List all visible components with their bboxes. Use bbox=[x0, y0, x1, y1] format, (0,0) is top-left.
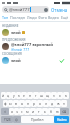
button[interactable]: злой bbox=[0, 56, 70, 65]
button[interactable]: г bbox=[33, 92, 39, 99]
staticText: Отмена bbox=[51, 7, 68, 13]
staticText: СООБЩЕНИЯ bbox=[2, 52, 22, 56]
button[interactable]: Люди bbox=[26, 15, 37, 20]
button[interactable]: с bbox=[19, 108, 24, 115]
button[interactable]: ы bbox=[8, 100, 13, 107]
staticText: НЕДАВНИЕ bbox=[2, 24, 19, 28]
staticText: Пробел bbox=[31, 117, 44, 122]
staticText: а bbox=[21, 101, 23, 106]
button[interactable]: ь bbox=[42, 108, 48, 115]
staticText: б bbox=[50, 109, 53, 114]
button[interactable]: я bbox=[9, 108, 14, 115]
staticText: з bbox=[53, 93, 55, 98]
button[interactable]: э bbox=[61, 100, 67, 107]
button[interactable]: т bbox=[36, 108, 42, 115]
button[interactable]: х bbox=[57, 92, 63, 99]
staticText: м bbox=[26, 109, 29, 114]
button[interactable]: ю bbox=[54, 108, 60, 115]
staticText: Фото bbox=[38, 15, 47, 20]
button[interactable]: е bbox=[21, 92, 27, 99]
button[interactable]: л bbox=[43, 100, 49, 107]
button[interactable]: ☺ bbox=[13, 116, 21, 123]
button[interactable]: н bbox=[27, 92, 33, 99]
button[interactable]: к bbox=[16, 92, 21, 99]
button[interactable]: й bbox=[1, 92, 6, 99]
staticText: р bbox=[33, 101, 36, 106]
button[interactable]: ⌫ bbox=[60, 108, 69, 115]
staticText: ч bbox=[16, 109, 18, 114]
staticText: л bbox=[45, 101, 47, 106]
staticText: в bbox=[15, 101, 17, 106]
button[interactable]: щ bbox=[45, 92, 51, 99]
staticText: Люди bbox=[27, 15, 37, 20]
button[interactable]: р bbox=[31, 100, 37, 107]
button[interactable]: д bbox=[49, 100, 55, 107]
staticText: @злой777 bbox=[9, 7, 30, 13]
staticText: ☺ bbox=[15, 118, 19, 121]
button[interactable]: ъ bbox=[63, 92, 69, 99]
button[interactable]: ф bbox=[3, 100, 8, 107]
staticText: у bbox=[13, 93, 15, 98]
button[interactable]: и bbox=[30, 108, 36, 115]
button[interactable]: ш bbox=[39, 92, 45, 99]
staticText: ПРЕДЛОЖЕНИЯ bbox=[2, 38, 26, 42]
button[interactable]: Топ bbox=[0, 15, 10, 20]
staticText: х bbox=[59, 93, 61, 98]
staticText: с bbox=[21, 109, 23, 114]
staticText: н bbox=[29, 93, 32, 98]
staticText: ь bbox=[44, 109, 46, 114]
staticText: ⇧ bbox=[4, 110, 7, 113]
button[interactable]: б bbox=[48, 108, 54, 115]
staticText: ю bbox=[56, 109, 59, 114]
staticText: Найти bbox=[57, 118, 67, 122]
staticText: д bbox=[51, 101, 54, 106]
button[interactable]: @злой777 bbox=[2, 6, 49, 13]
staticText: ъ bbox=[65, 93, 68, 98]
staticText: е bbox=[23, 93, 25, 98]
button[interactable]: @злой777 эхронный bbox=[0, 42, 70, 51]
staticText: злой bbox=[11, 58, 21, 63]
button[interactable]: Фото bbox=[37, 15, 48, 20]
staticText: ⌫ bbox=[62, 110, 67, 113]
staticText: Видео bbox=[48, 15, 59, 20]
staticText: @злой777 эхронный bbox=[11, 42, 53, 47]
staticText: и bbox=[32, 109, 35, 114]
button[interactable]: ц bbox=[6, 92, 11, 99]
button[interactable]: ⇧ bbox=[1, 108, 9, 115]
button[interactable]: у bbox=[11, 92, 16, 99]
staticText: ж bbox=[57, 101, 60, 106]
staticText: ц bbox=[7, 93, 10, 98]
button[interactable]: Отмена bbox=[50, 7, 69, 13]
button[interactable]: ?123 bbox=[1, 116, 13, 123]
staticText: злой bbox=[11, 30, 21, 35]
button[interactable]: м bbox=[24, 108, 30, 115]
button[interactable]: ч bbox=[14, 108, 19, 115]
staticText: т bbox=[38, 109, 40, 114]
staticText: г bbox=[35, 93, 37, 98]
button[interactable]: Найти bbox=[54, 116, 69, 123]
staticText: п bbox=[27, 101, 30, 106]
button[interactable]: о bbox=[37, 100, 43, 107]
button[interactable]: п bbox=[25, 100, 31, 107]
button[interactable]: а bbox=[19, 100, 25, 107]
staticText: я bbox=[11, 109, 13, 114]
button[interactable]: Clear bbox=[44, 8, 48, 12]
button[interactable]: в bbox=[13, 100, 19, 107]
button[interactable]: з bbox=[51, 92, 57, 99]
staticText: о bbox=[39, 101, 42, 106]
button[interactable]: Пробел bbox=[21, 116, 54, 123]
staticText: ?123 bbox=[4, 118, 11, 122]
staticText: Топ bbox=[2, 15, 9, 20]
staticText: й bbox=[2, 93, 5, 98]
staticText: ш bbox=[40, 93, 44, 98]
staticText: к bbox=[18, 93, 20, 98]
button[interactable]: Ещё bbox=[59, 15, 70, 20]
staticText: Последние bbox=[10, 15, 26, 20]
staticText: Ещё bbox=[61, 15, 69, 20]
button[interactable]: ж bbox=[55, 100, 61, 107]
staticText: э bbox=[63, 101, 65, 106]
button[interactable]: Видео bbox=[48, 15, 59, 20]
button[interactable]: злой bbox=[0, 28, 70, 37]
button[interactable]: Последние bbox=[10, 15, 26, 20]
staticText: @злой_777 bbox=[11, 47, 30, 51]
